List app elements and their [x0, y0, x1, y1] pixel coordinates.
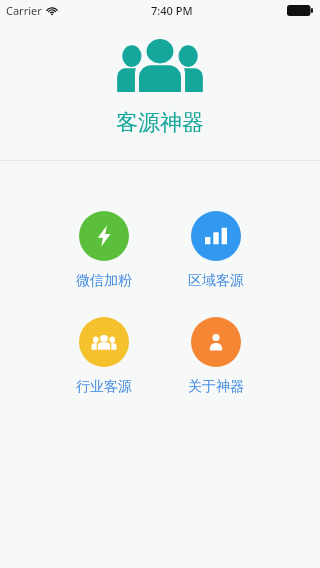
staticText: 区域客源 — [188, 272, 244, 290]
button[interactable]: 区域客源 — [160, 210, 272, 291]
staticText: 微信加粉 — [76, 272, 132, 290]
staticText: 行业客源 — [76, 378, 132, 396]
other: App logo — [118, 38, 202, 92]
staticText: Carrier — [6, 3, 42, 18]
staticText: 客源神器 — [116, 109, 204, 137]
staticText: 7:40 PM — [151, 3, 193, 18]
button[interactable]: 微信加粉 — [48, 210, 160, 291]
button[interactable]: 关于神器 — [160, 316, 272, 397]
button[interactable]: 行业客源 — [48, 316, 160, 397]
staticText: 关于神器 — [188, 378, 244, 396]
